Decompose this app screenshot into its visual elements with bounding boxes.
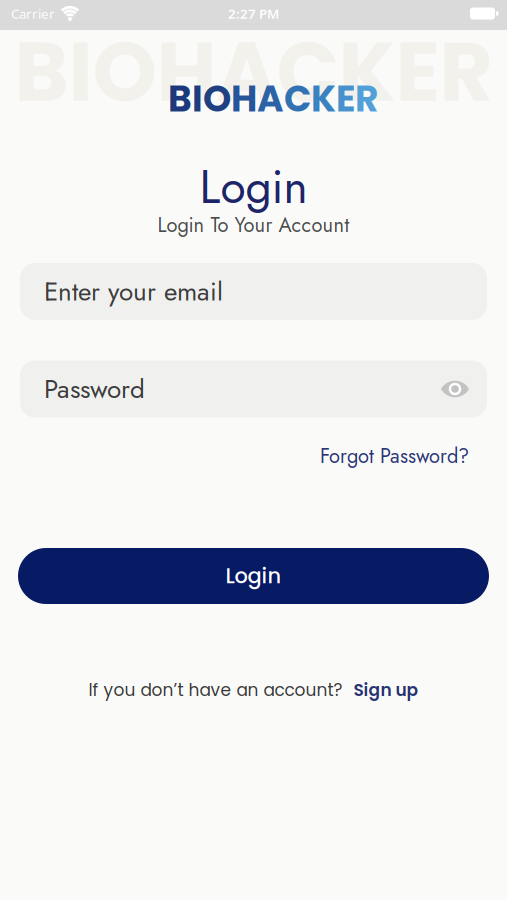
staticText: Password xyxy=(44,370,145,408)
button[interactable]: Sign up xyxy=(353,678,418,702)
staticText: 2:27 PM xyxy=(228,5,279,22)
staticText: K xyxy=(311,74,336,124)
staticText: Enter your email xyxy=(44,273,223,310)
staticText: A xyxy=(257,74,284,124)
staticText: Carrier xyxy=(11,5,55,22)
button[interactable]: Enter your email xyxy=(20,263,487,320)
staticText: R xyxy=(355,74,378,124)
staticText: If you don’t have an account? xyxy=(88,678,342,702)
staticText: Sign up xyxy=(353,678,418,702)
staticText: H xyxy=(231,74,257,124)
staticText: Login xyxy=(225,561,281,591)
button[interactable]: Login xyxy=(18,548,489,604)
staticText: BIOHACKER xyxy=(14,15,492,129)
staticText: Login To Your Account xyxy=(157,210,349,239)
staticText: I xyxy=(192,74,203,124)
staticText: O xyxy=(203,74,231,124)
button[interactable]: Password xyxy=(20,360,487,417)
staticText: E xyxy=(336,74,355,124)
staticText: B xyxy=(168,74,192,124)
staticText: Login xyxy=(199,154,307,220)
staticText: Forgot Password? xyxy=(320,441,469,470)
staticText: C xyxy=(284,74,311,124)
button[interactable]: Forgot Password? xyxy=(320,441,469,470)
